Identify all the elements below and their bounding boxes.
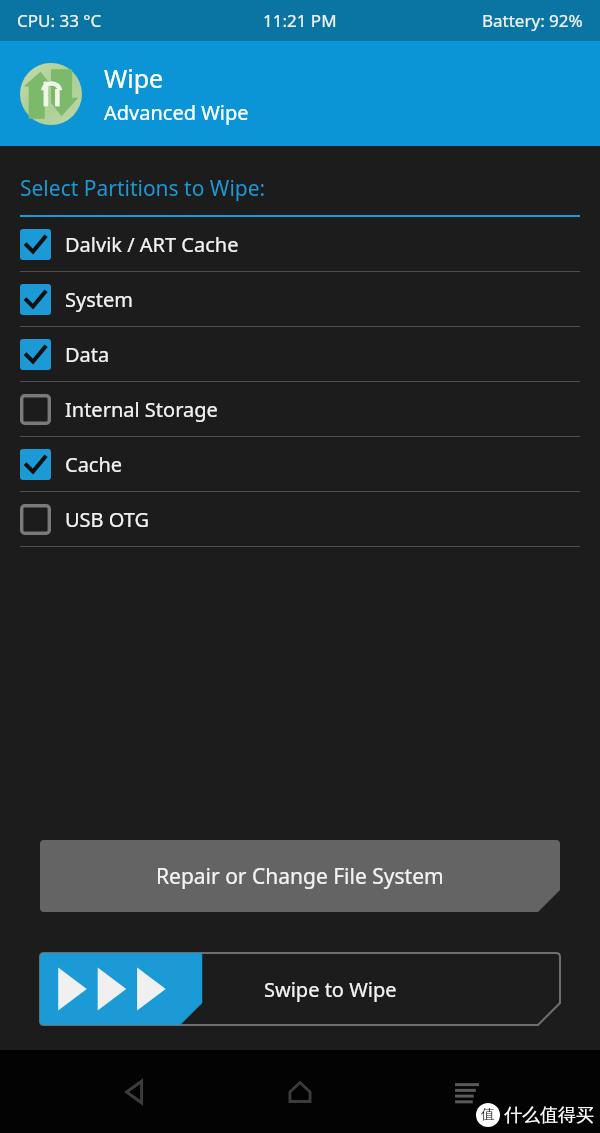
button[interactable]: USB OTG <box>0 492 600 546</box>
staticText: Cache <box>65 451 123 478</box>
button[interactable]: Swipe to Wipe <box>40 953 560 1025</box>
button[interactable]: Back <box>105 1062 165 1122</box>
staticText: Dalvik / ART Cache <box>65 231 239 258</box>
staticText: System <box>65 286 133 313</box>
button[interactable]: Internal Storage <box>0 382 600 436</box>
staticText: USB OTG <box>65 506 150 533</box>
button[interactable]: Home <box>270 1062 330 1122</box>
button[interactable]: Cache <box>0 437 600 491</box>
button[interactable]: Wipe <box>0 41 600 146</box>
staticText: 11:21 PM <box>263 9 337 32</box>
button[interactable]: Data <box>0 327 600 381</box>
staticText: CPU: 33 °C <box>17 9 102 32</box>
button[interactable]: Recents <box>437 1062 497 1122</box>
staticText: Data <box>65 341 110 368</box>
staticText: Internal Storage <box>65 396 218 423</box>
staticText: Wipe <box>104 61 164 95</box>
staticText: 什么值得买 <box>504 1104 594 1127</box>
staticText: Swipe to Wipe <box>264 976 397 1003</box>
button[interactable]: Dalvik / ART Cache <box>0 217 600 271</box>
staticText: Select Partitions to Wipe: <box>20 174 266 203</box>
button[interactable]: System <box>0 272 600 326</box>
button[interactable]: Repair or Change File System <box>40 840 560 912</box>
staticText: Battery: 92% <box>482 9 583 32</box>
staticText: Advanced Wipe <box>104 99 249 126</box>
staticText: 值 <box>481 1106 495 1124</box>
staticText: Repair or Change File System <box>156 862 444 891</box>
